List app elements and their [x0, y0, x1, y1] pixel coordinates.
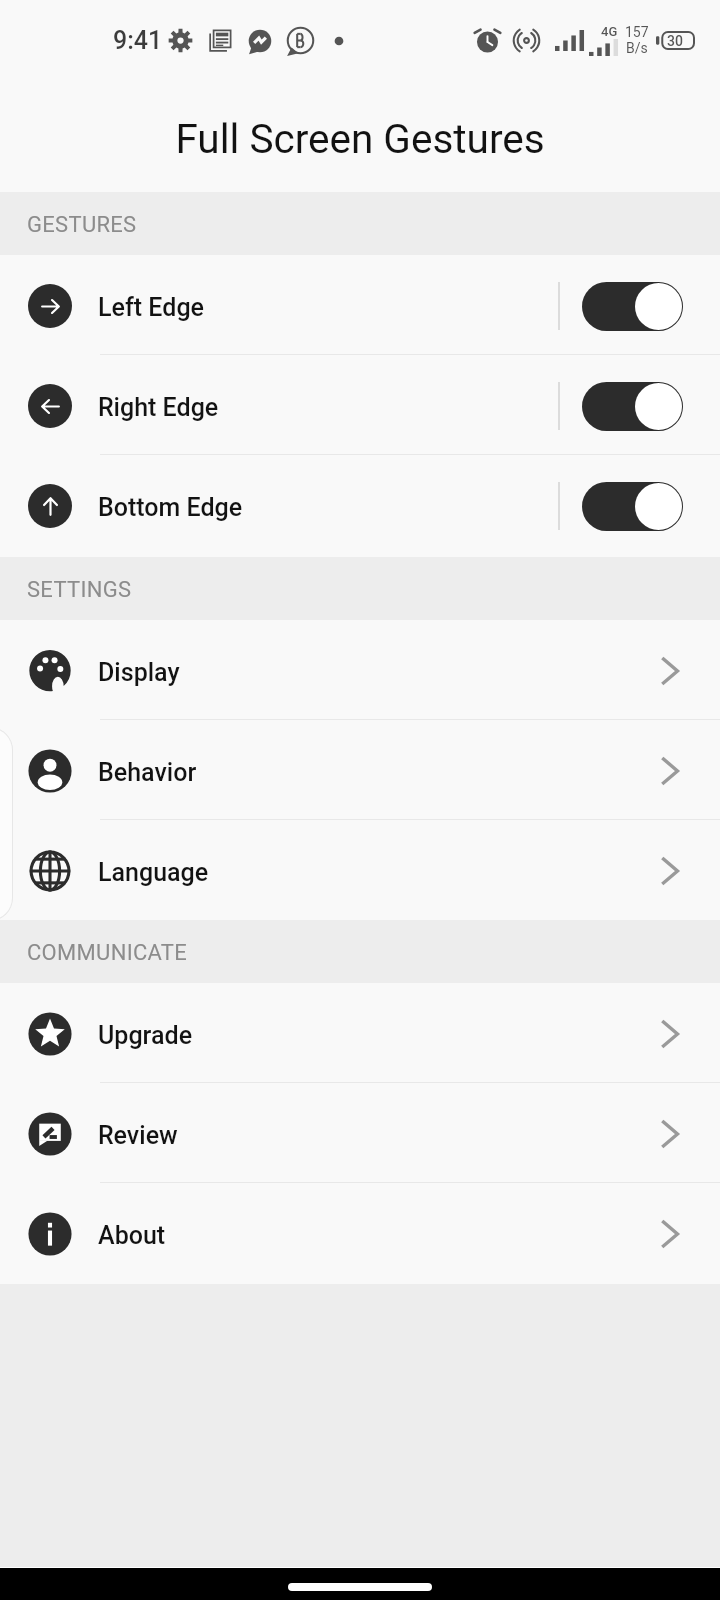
- staticText: Bottom Edge: [98, 493, 243, 522]
- button[interactable]: Display: [0, 620, 720, 720]
- button[interactable]: Left Edge: [0, 255, 720, 355]
- staticText: 9:41: [113, 26, 163, 55]
- staticText: COMMUNICATE: [27, 940, 188, 966]
- button[interactable]: Language: [0, 820, 720, 920]
- staticText: Behavior: [98, 758, 197, 787]
- button[interactable]: Toggle Bottom Edge: [582, 482, 683, 531]
- button[interactable]: Bottom Edge: [0, 455, 720, 555]
- staticText: Left Edge: [98, 293, 204, 322]
- staticText: 30: [667, 33, 683, 49]
- staticText: B/s: [626, 40, 648, 56]
- staticText: 157: [625, 24, 649, 40]
- staticText: Display: [98, 658, 180, 687]
- button[interactable]: Behavior: [0, 720, 720, 820]
- staticText: Right Edge: [98, 393, 219, 422]
- staticText: Review: [98, 1121, 178, 1150]
- button[interactable]: About: [0, 1183, 720, 1283]
- staticText: GESTURES: [27, 212, 137, 238]
- staticText: Full Screen Gestures: [175, 115, 545, 162]
- staticText: Upgrade: [98, 1021, 193, 1050]
- staticText: SETTINGS: [27, 577, 132, 603]
- button[interactable]: Toggle Right Edge: [582, 382, 683, 431]
- staticText: Language: [98, 858, 209, 887]
- staticText: About: [98, 1221, 166, 1250]
- button[interactable]: Toggle Left Edge: [582, 282, 683, 331]
- button[interactable]: Right Edge: [0, 355, 720, 455]
- button[interactable]: Upgrade: [0, 983, 720, 1083]
- staticText: 4G: [601, 24, 618, 39]
- button[interactable]: Review: [0, 1083, 720, 1183]
